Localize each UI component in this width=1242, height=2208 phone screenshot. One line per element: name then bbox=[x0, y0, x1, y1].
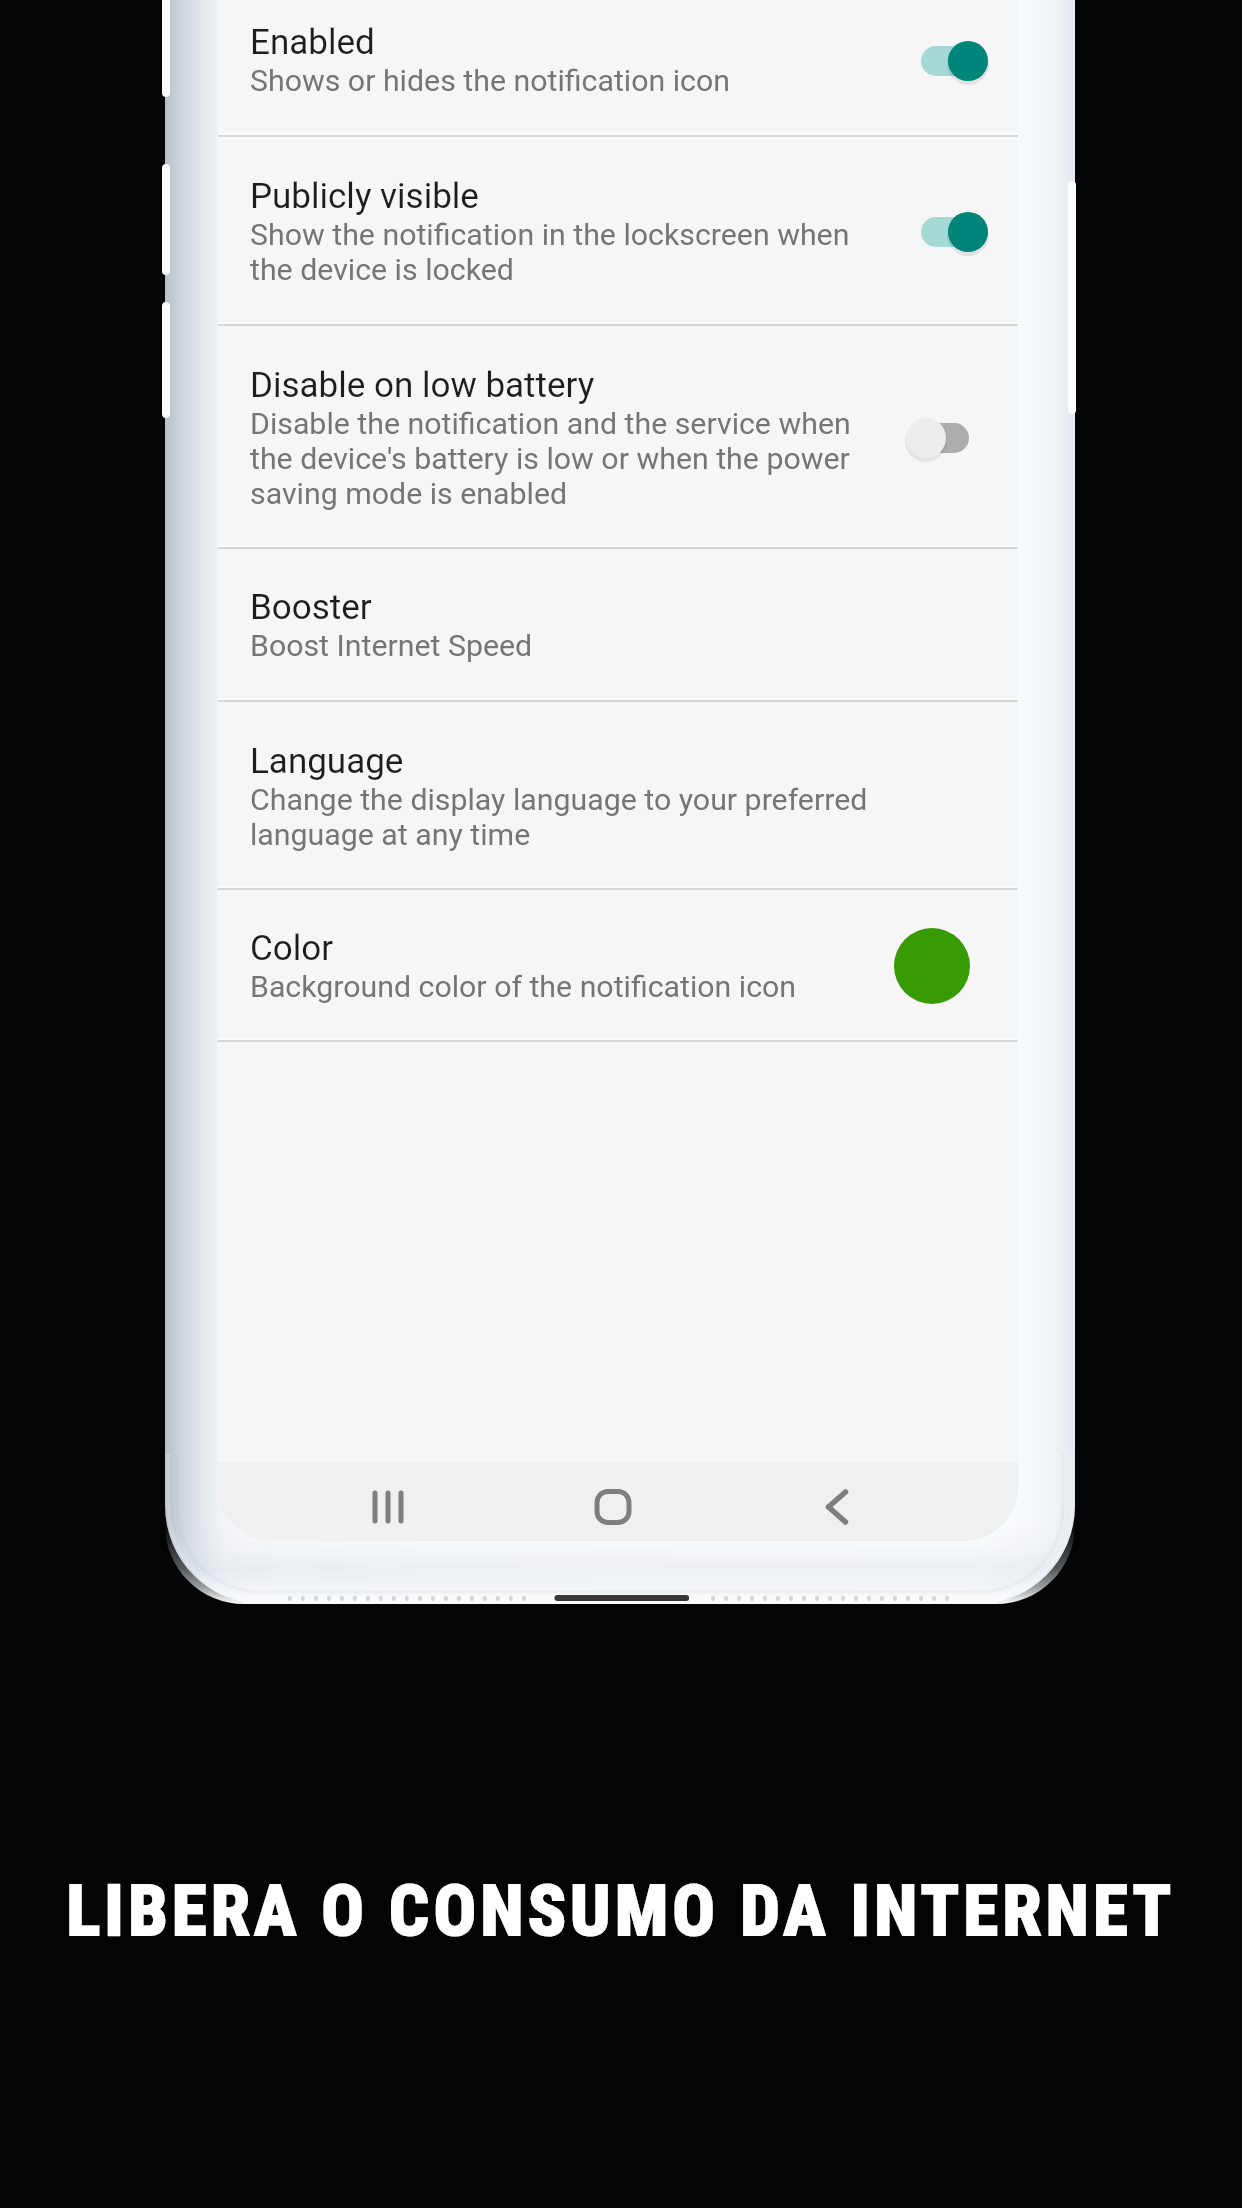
button[interactable]: Publicly visible bbox=[218, 137, 1018, 326]
staticText: Disable on low battery bbox=[250, 365, 595, 406]
button[interactable]: Color bbox=[218, 890, 1018, 1042]
staticText: LIBERA O CONSUMO DA INTERNET bbox=[0, 1870, 1242, 1952]
staticText: Boost Internet Speed bbox=[250, 628, 533, 664]
button[interactable]: Back bbox=[781, 1462, 893, 1541]
staticText: Enabled bbox=[250, 22, 375, 63]
staticText: Language bbox=[250, 741, 404, 782]
staticText: Background color of the notification ico… bbox=[250, 969, 797, 1005]
staticText: Show the notification in the lockscreen … bbox=[250, 217, 898, 287]
staticText: Color bbox=[250, 928, 334, 969]
button[interactable]: Disable on low battery bbox=[218, 326, 1018, 549]
staticText: Change the display language to your pref… bbox=[250, 782, 898, 852]
button[interactable]: Recent apps bbox=[332, 1462, 444, 1541]
button[interactable]: Pick notification colour bbox=[894, 928, 970, 1004]
staticText: Shows or hides the notification icon bbox=[250, 63, 730, 99]
button[interactable]: Booster bbox=[218, 549, 1018, 702]
button[interactable]: Language bbox=[218, 702, 1018, 890]
button[interactable]: Enabled bbox=[218, 0, 1018, 137]
button[interactable] bbox=[900, 206, 988, 258]
staticText: Booster bbox=[250, 587, 372, 628]
button[interactable] bbox=[900, 412, 988, 464]
staticText: Disable the notification and the service… bbox=[250, 406, 898, 511]
button[interactable]: Home bbox=[557, 1462, 669, 1541]
staticText: Publicly visible bbox=[250, 176, 479, 217]
button[interactable] bbox=[900, 35, 988, 87]
